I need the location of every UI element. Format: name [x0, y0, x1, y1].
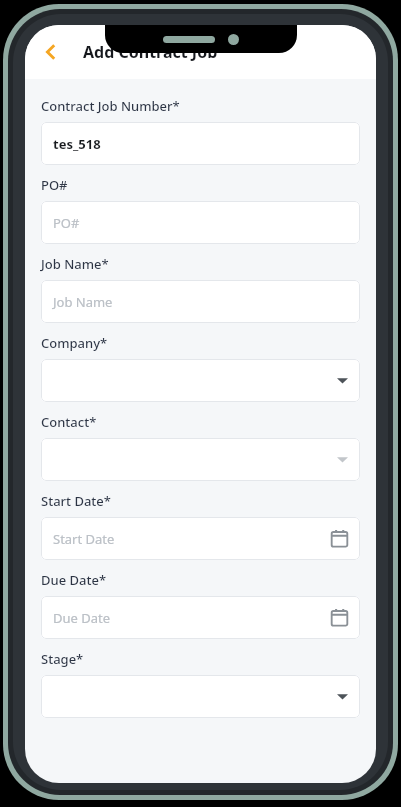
button[interactable]	[41, 359, 360, 402]
button[interactable]: Start Date	[41, 517, 360, 560]
staticText: Company*	[41, 334, 108, 352]
staticText: Start Date	[53, 530, 115, 548]
staticText: tes_518	[53, 135, 101, 153]
button[interactable]	[41, 438, 360, 481]
button[interactable]: PO#	[41, 201, 360, 244]
staticText: Due Date	[53, 609, 111, 627]
staticText: Job Name	[53, 293, 113, 311]
staticText: PO#	[53, 214, 80, 232]
staticText: Due Date*	[41, 571, 107, 589]
button[interactable]: Back	[33, 34, 69, 70]
button[interactable]	[41, 675, 360, 718]
staticText: Start Date*	[41, 492, 111, 510]
staticText: Contact*	[41, 413, 97, 431]
button[interactable]: Job Name	[41, 280, 360, 323]
staticText: Stage*	[41, 650, 84, 668]
staticText: Add Contract Job	[83, 41, 218, 63]
button[interactable]: tes_518	[41, 122, 360, 165]
staticText: Contract Job Number*	[41, 97, 180, 115]
staticText: PO#	[41, 176, 68, 194]
button[interactable]: Due Date	[41, 596, 360, 639]
staticText: Job Name*	[41, 255, 109, 273]
